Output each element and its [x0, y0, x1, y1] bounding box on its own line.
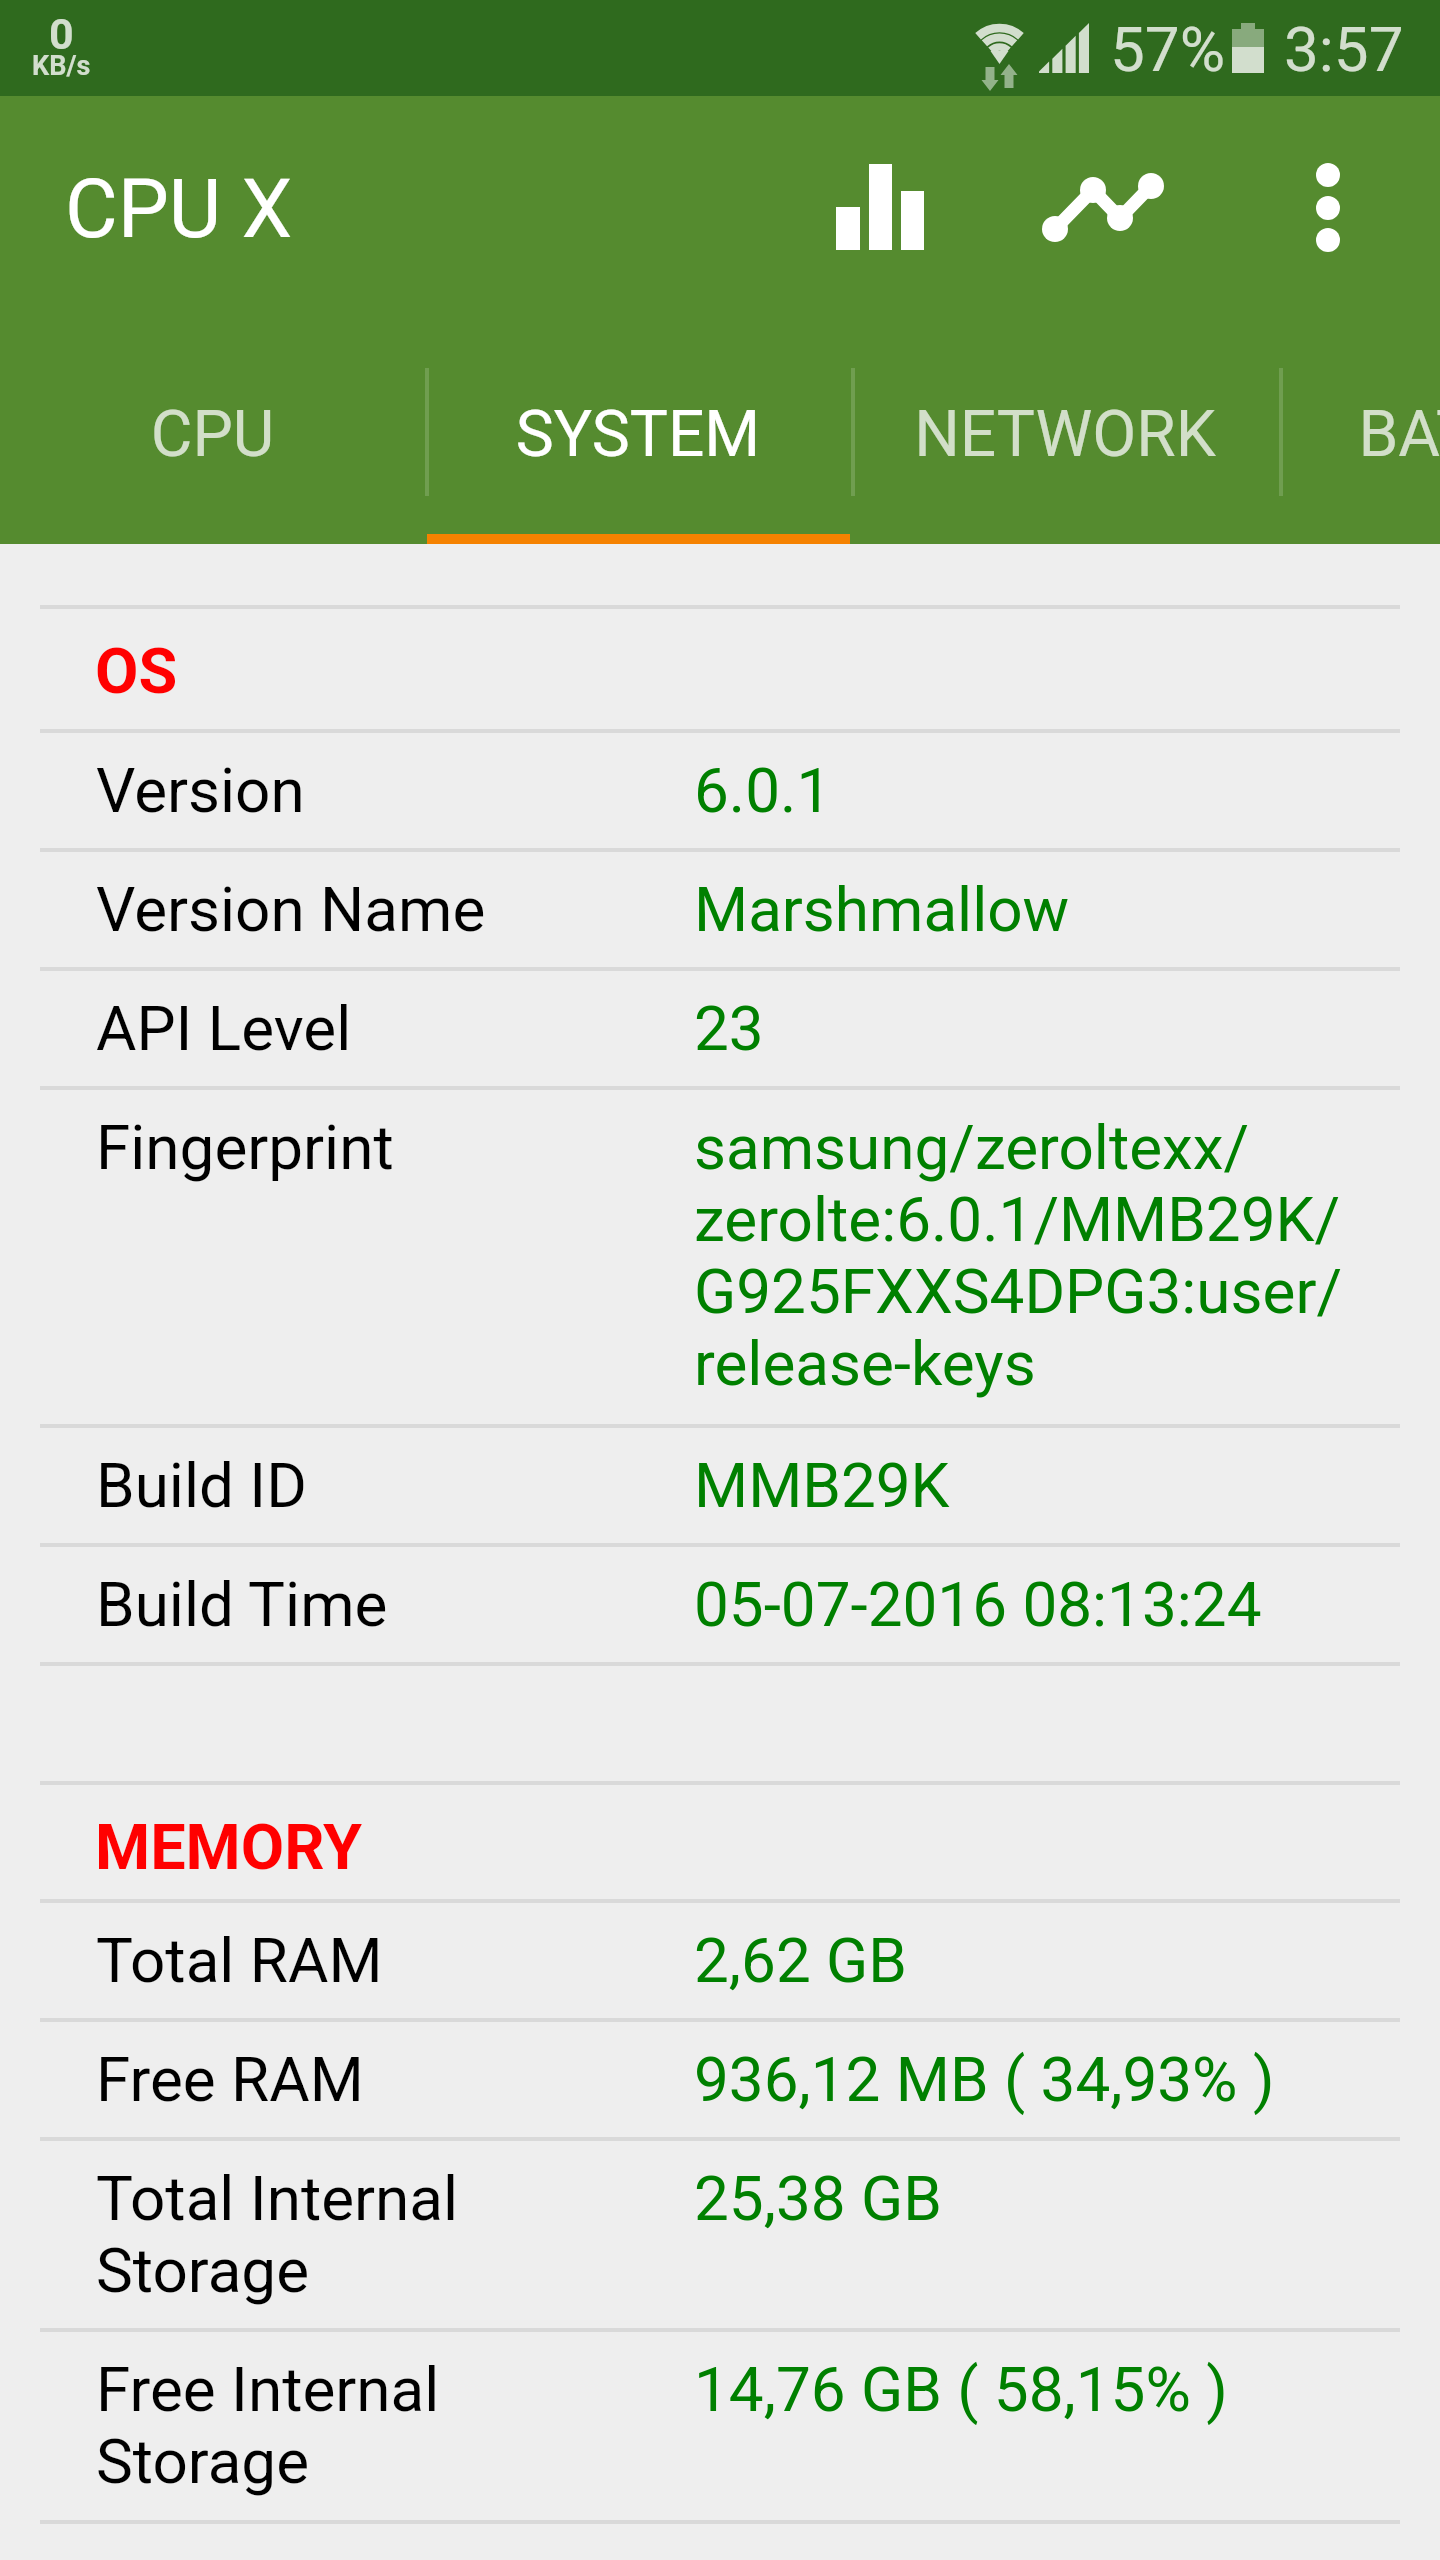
staticText: 14,76 GB ( 58,15% ) [694, 2353, 1394, 2426]
button[interactable]: Monitor [1000, 115, 1200, 295]
staticText: Marshmallow [694, 873, 1394, 946]
staticText: Fingerprint [96, 1111, 694, 1184]
button[interactable]: Total RAM [0, 1903, 1440, 2018]
button[interactable]: Statistics [790, 115, 970, 295]
staticText: Total RAM [96, 1924, 694, 1997]
button[interactable]: Free RAM [0, 2022, 1440, 2137]
staticText: 2,62 GB [694, 1924, 1394, 1997]
staticText: 23 [694, 992, 1394, 1065]
staticText: 57% [1110, 13, 1226, 86]
other: Battery [1232, 23, 1264, 73]
staticText: 05-07-2016 08:13:24 [694, 1568, 1394, 1641]
button[interactable]: Version [0, 733, 1440, 848]
button[interactable]: Fingerprint [0, 1090, 1440, 1424]
staticText: MEMORY [95, 1811, 363, 1885]
staticText: CPU [0, 397, 425, 472]
other: Signal [1039, 23, 1089, 73]
staticText: samsung/zeroltexx/ zerolte:6.0.1/MMB29K/… [694, 1111, 1394, 1400]
staticText: OS [95, 635, 178, 709]
staticText: KB/s [32, 50, 91, 82]
staticText: MMB29K [694, 1449, 1394, 1522]
button[interactable]: Build ID [0, 1428, 1440, 1543]
button[interactable]: API Level [0, 971, 1440, 1086]
staticText: CPU X [65, 162, 293, 257]
staticText: Version Name [96, 873, 694, 946]
button[interactable]: Build Time [0, 1547, 1440, 1662]
button[interactable]: BATTERY [1279, 368, 1440, 544]
staticText: 0 [49, 9, 74, 59]
staticText: Free RAM [96, 2043, 694, 2116]
staticText: API Level [96, 992, 694, 1065]
staticText: Free Internal Storage [96, 2353, 694, 2498]
other: Wi-Fi [976, 18, 1028, 76]
button[interactable]: CPU [0, 368, 425, 544]
staticText: SYSTEM [425, 397, 851, 472]
button[interactable]: Total Internal Storage [0, 2141, 1440, 2328]
staticText: BATTERY [1279, 397, 1440, 472]
button[interactable]: More options [1250, 115, 1410, 295]
button[interactable]: Version Name [0, 852, 1440, 967]
button[interactable]: SYSTEM [425, 368, 851, 544]
button[interactable]: NETWORK [851, 368, 1279, 544]
button[interactable]: Free Internal Storage [0, 2332, 1440, 2520]
staticText: 3:57 [1284, 13, 1404, 86]
staticText: Version [96, 754, 694, 827]
staticText: Build Time [96, 1568, 694, 1641]
staticText: Build ID [96, 1449, 694, 1522]
staticText: 936,12 MB ( 34,93% ) [694, 2043, 1394, 2116]
staticText: NETWORK [851, 397, 1279, 472]
staticText: 25,38 GB [694, 2162, 1394, 2235]
staticText: 6.0.1 [694, 754, 1394, 827]
staticText: Total Internal Storage [96, 2162, 694, 2307]
